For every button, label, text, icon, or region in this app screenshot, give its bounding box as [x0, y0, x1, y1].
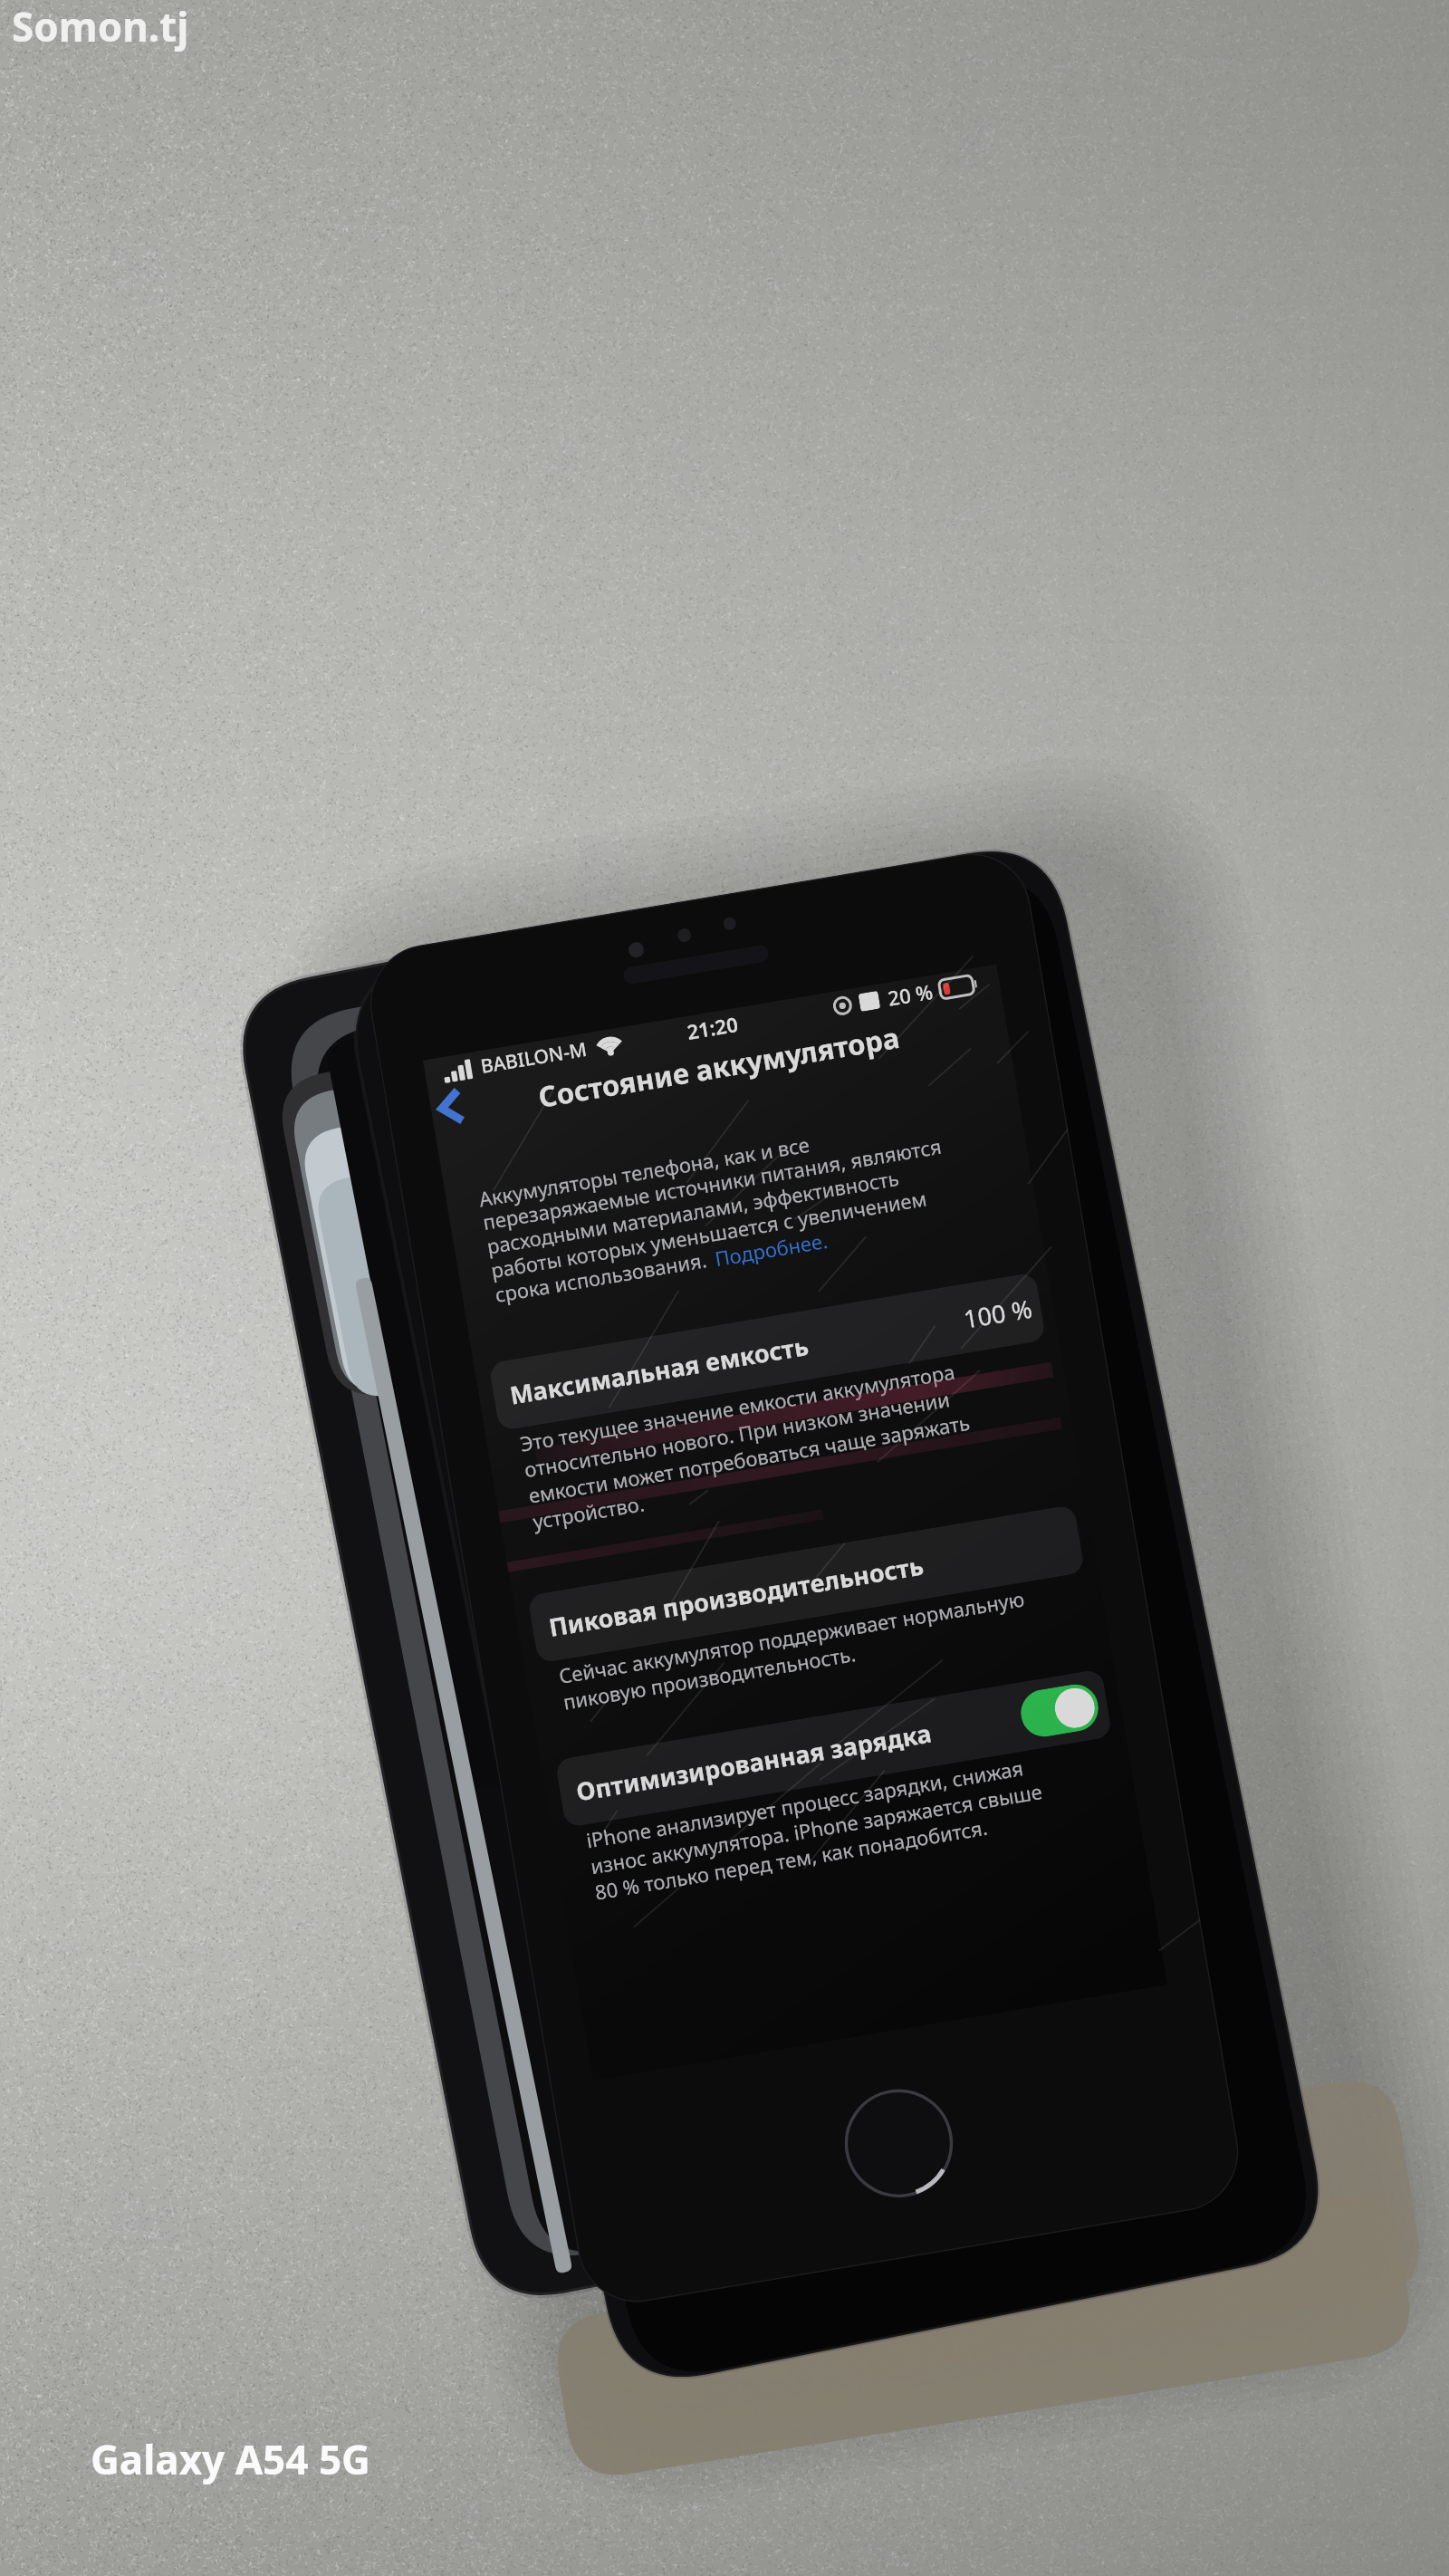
staticText: iPhone анализирует процесс зарядки, сниж… [584, 1751, 1048, 1905]
staticText: Это текущее значение емкости аккумулятор… [518, 1356, 977, 1535]
button[interactable]: Максимальная емкость [488, 1272, 1046, 1431]
staticText: 20 % [886, 977, 935, 1011]
staticText: 21:20 [685, 1010, 740, 1045]
staticText: Состояние аккумулятора [429, 1000, 1009, 1134]
button[interactable]: Пиковая производительность [527, 1504, 1085, 1664]
button[interactable]: Back [422, 1078, 480, 1136]
button[interactable]: Home [836, 2081, 961, 2206]
staticText: BABILON-M [479, 1036, 589, 1080]
staticText: Сейчас аккумулятор поддерживает нормальн… [557, 1585, 1031, 1715]
staticText: Galaxy A54 5G [91, 2432, 370, 2486]
staticText: Аккумуляторы телефона, как и все перезар… [477, 1109, 956, 1309]
button[interactable]: Optimised charging toggle [1017, 1681, 1102, 1740]
button[interactable]: Оптимизированная зарядка [555, 1669, 1113, 1828]
staticText: Somon.tj [12, 0, 189, 53]
staticText: Максимальная емкость [507, 1329, 811, 1412]
staticText: Подробнее. [713, 1226, 830, 1272]
staticText: Оптимизированная зарядка [574, 1716, 934, 1808]
staticText: Пиковая производительность [546, 1548, 926, 1644]
staticText: 100 % [961, 1291, 1034, 1336]
